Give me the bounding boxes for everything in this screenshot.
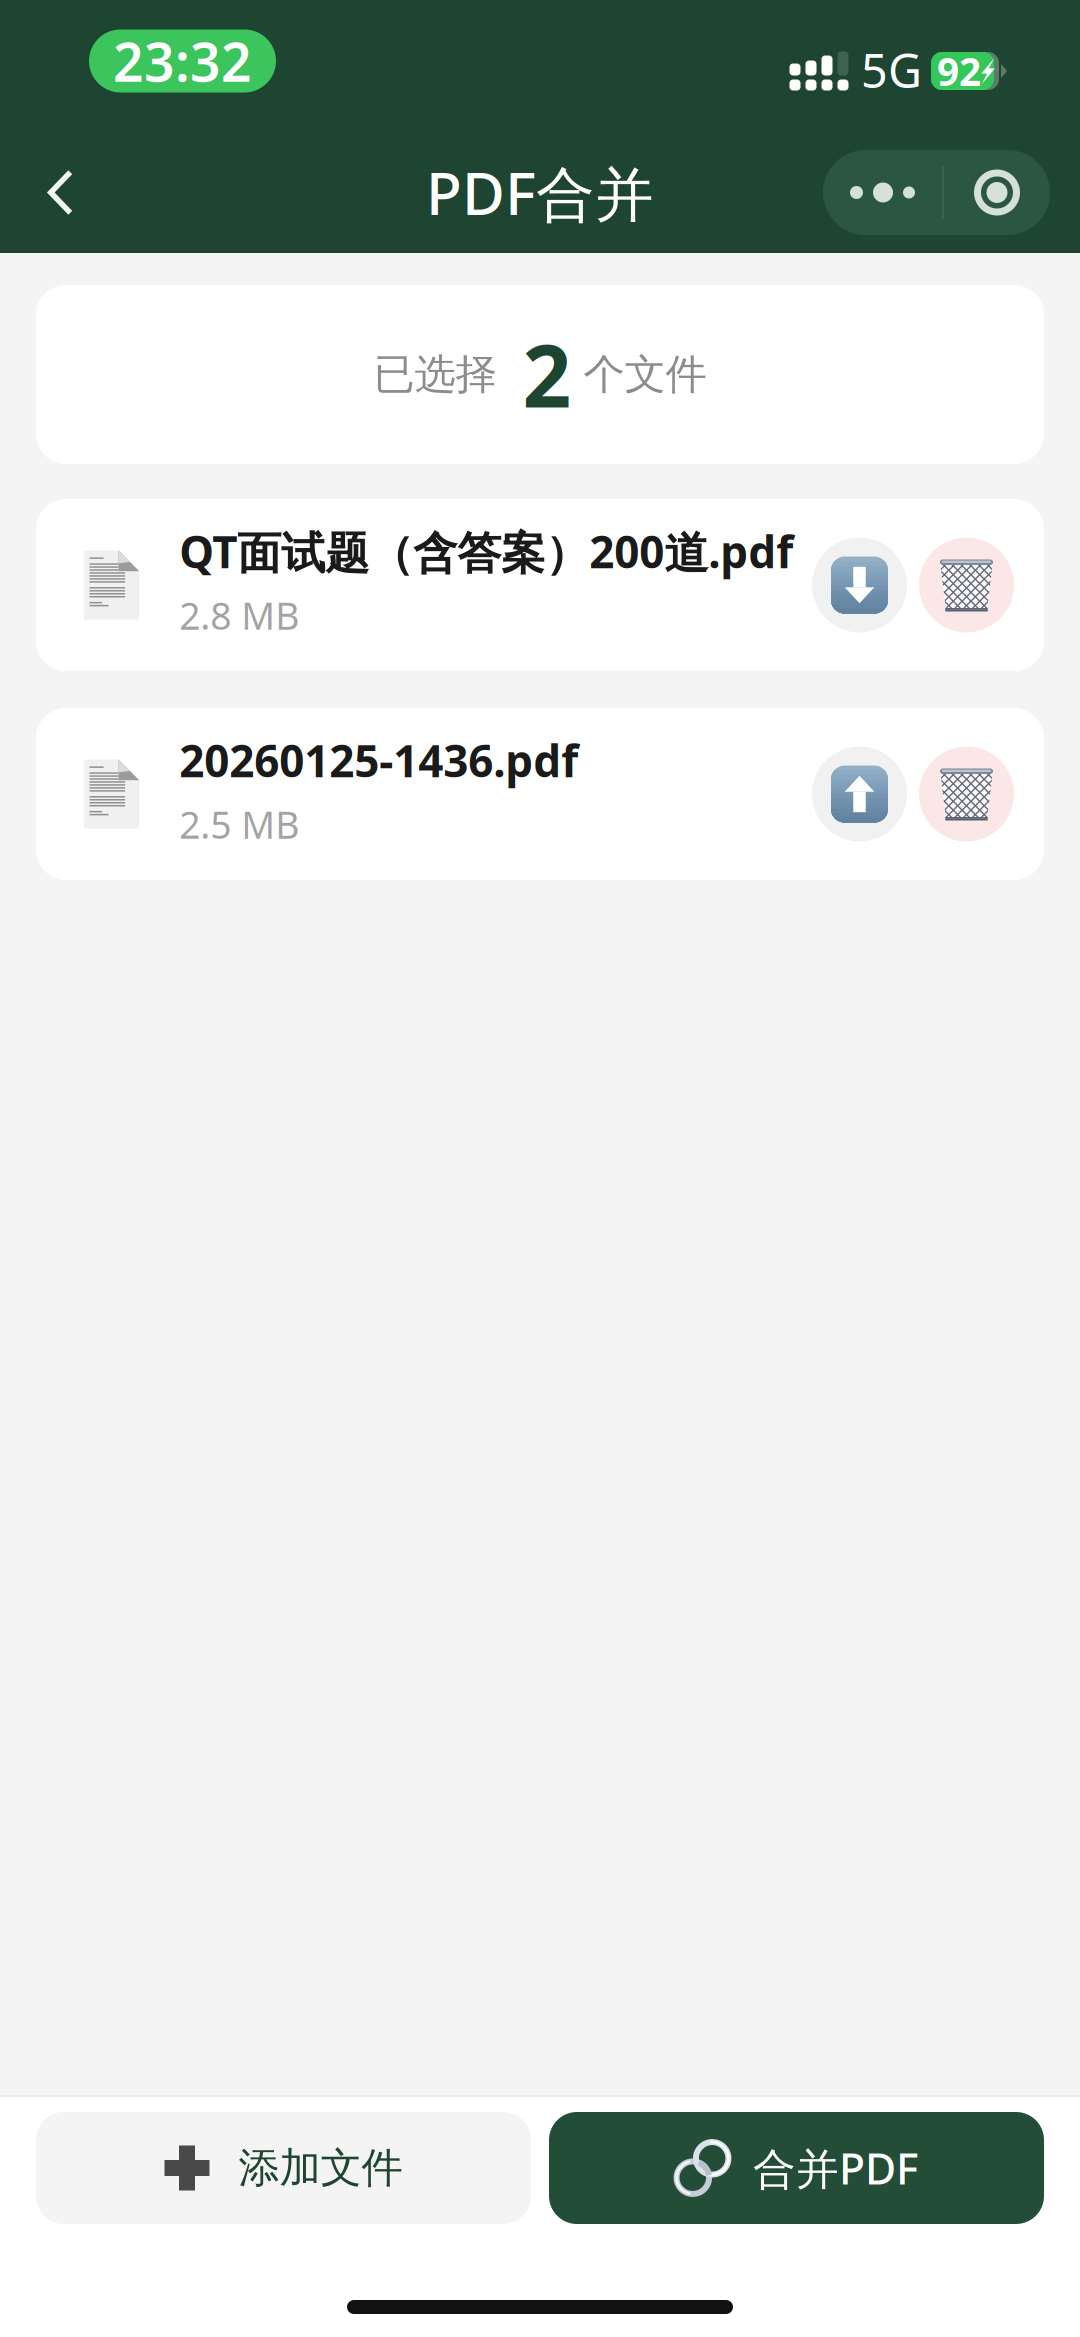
staticText: 合并PDF (753, 2140, 919, 2196)
staticText: 2 (522, 318, 571, 431)
staticText: 已选择 (373, 349, 496, 400)
button[interactable]: Move up (812, 746, 907, 841)
staticText: 92 (937, 45, 981, 97)
staticText: 5G (861, 39, 922, 101)
staticText: 2.5 MB (179, 799, 299, 849)
staticText: PDF合并 (426, 153, 654, 232)
staticText: 个文件 (583, 349, 706, 400)
button[interactable]: Move down (812, 537, 907, 632)
button[interactable]: More options (823, 150, 1050, 235)
staticText: 添加文件 (238, 2143, 402, 2193)
staticText: 20260125-1436.pdf (179, 731, 578, 789)
staticText: 23:32 (113, 26, 252, 96)
button[interactable]: 合并PDF (549, 2112, 1044, 2224)
button[interactable]: Back (0, 143, 113, 241)
button[interactable]: Delete (919, 746, 1014, 841)
staticText: QT面试题（含答案）200道.pdf (179, 522, 793, 581)
staticText: 2.8 MB (179, 590, 299, 640)
button[interactable]: 添加文件 (36, 2112, 531, 2224)
button[interactable]: Delete (919, 537, 1014, 632)
